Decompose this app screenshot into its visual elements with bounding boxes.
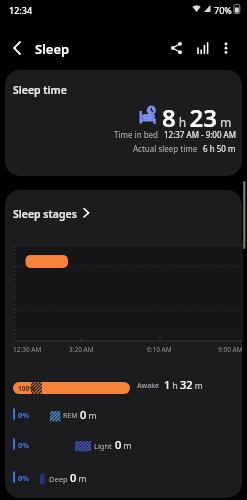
staticText: 0 m xyxy=(115,437,132,452)
button[interactable] xyxy=(166,40,184,58)
staticText: Time in bed xyxy=(114,129,159,140)
staticText: 0 m xyxy=(70,470,87,485)
staticText: 1 h 32 m xyxy=(164,377,203,392)
staticText: Awake xyxy=(137,380,160,390)
staticText: 8 h 23 m xyxy=(162,101,232,134)
staticText: REM xyxy=(63,411,78,421)
staticText: 0% xyxy=(18,410,30,420)
staticText: 0% xyxy=(18,440,30,450)
button[interactable] xyxy=(8,433,238,457)
button[interactable] xyxy=(8,403,238,427)
staticText: Sleep xyxy=(35,40,70,58)
staticText: Light xyxy=(94,441,112,451)
button[interactable] xyxy=(8,466,238,490)
staticText: 6:10 AM xyxy=(147,345,172,354)
button[interactable] xyxy=(5,190,242,498)
staticText: 6 h 50 m xyxy=(203,143,236,154)
button[interactable] xyxy=(193,40,211,58)
button[interactable] xyxy=(8,40,26,58)
staticText: Actual sleep time xyxy=(133,143,198,154)
button[interactable] xyxy=(218,40,234,56)
staticText: 3:20 AM xyxy=(69,345,94,354)
staticText: Sleep time xyxy=(13,83,67,97)
staticText: 12:30 AM xyxy=(13,345,42,354)
staticText: Deep xyxy=(49,474,68,484)
staticText: Sleep stages xyxy=(13,207,77,221)
staticText: 9:00 AM xyxy=(218,345,243,354)
staticText: 12:37 AM - 9:00 AM xyxy=(164,129,236,140)
staticText: 100% xyxy=(18,384,36,393)
button[interactable] xyxy=(5,70,242,176)
staticText: 12:34 xyxy=(9,4,33,16)
staticText: 70% xyxy=(214,4,232,16)
staticText: 0 m xyxy=(80,407,97,422)
staticText: 0% xyxy=(18,473,30,483)
